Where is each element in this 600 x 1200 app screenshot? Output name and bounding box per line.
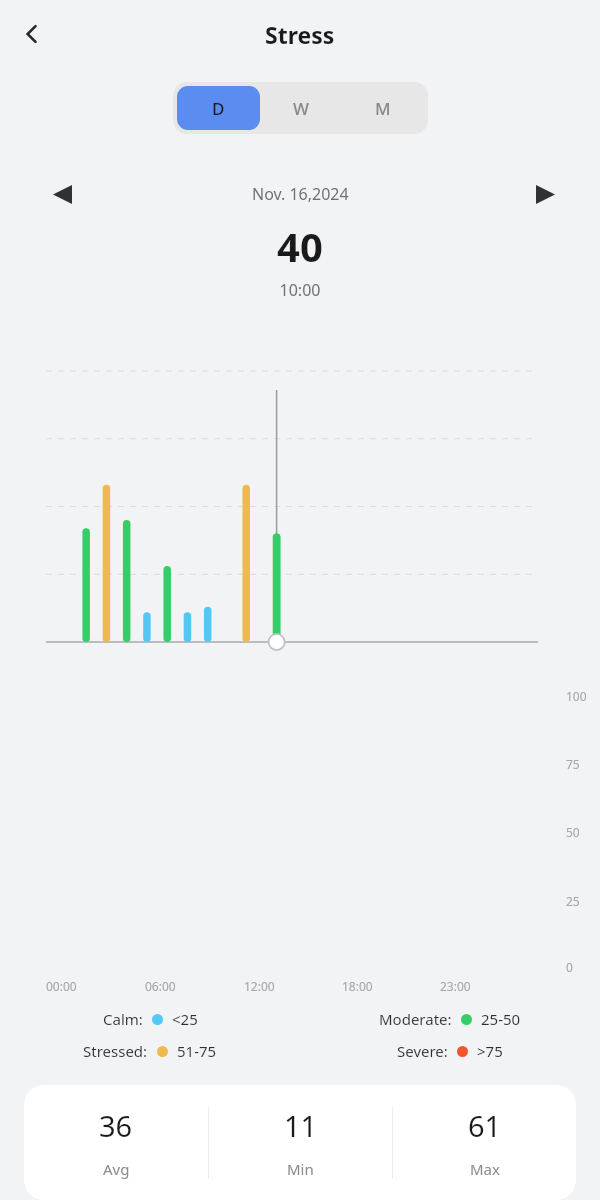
staticText: 75: [566, 756, 580, 772]
button[interactable]: W: [260, 86, 342, 130]
staticText: 00:00: [46, 978, 77, 994]
button[interactable]: Back: [8, 10, 56, 58]
staticText: Moderate:: [379, 1009, 452, 1029]
staticText: 23:00: [440, 978, 471, 994]
staticText: 51-75: [177, 1041, 217, 1061]
staticText: Min: [287, 1159, 314, 1179]
staticText: Max: [470, 1159, 500, 1179]
staticText: 61: [468, 1106, 502, 1145]
button[interactable]: Previous day: [40, 177, 84, 211]
staticText: Avg: [103, 1159, 130, 1179]
staticText: 0: [566, 959, 573, 975]
staticText: 12:00: [244, 978, 275, 994]
button[interactable]: Next day: [523, 177, 567, 211]
staticText: >75: [477, 1041, 503, 1061]
staticText: 50: [566, 824, 580, 840]
staticText: 36: [99, 1106, 133, 1145]
staticText: 18:00: [342, 978, 373, 994]
staticText: 25-50: [481, 1009, 521, 1029]
staticText: 40: [0, 219, 600, 273]
button[interactable]: M: [342, 86, 424, 130]
staticText: 10:00: [0, 279, 600, 301]
staticText: 25: [566, 893, 580, 909]
staticText: 100: [566, 688, 587, 704]
staticText: Nov. 16,2024: [252, 183, 349, 205]
staticText: Severe:: [397, 1041, 448, 1061]
staticText: M: [375, 97, 391, 120]
button[interactable]: D: [177, 86, 260, 130]
button[interactable]: 36: [24, 1085, 576, 1200]
staticText: 11: [284, 1106, 318, 1145]
staticText: 06:00: [145, 978, 176, 994]
staticText: Stressed:: [83, 1041, 148, 1061]
staticText: D: [212, 97, 225, 120]
staticText: W: [293, 97, 309, 120]
staticText: Calm:: [103, 1009, 143, 1029]
staticText: <25: [172, 1009, 198, 1029]
staticText: Stress: [265, 19, 335, 50]
